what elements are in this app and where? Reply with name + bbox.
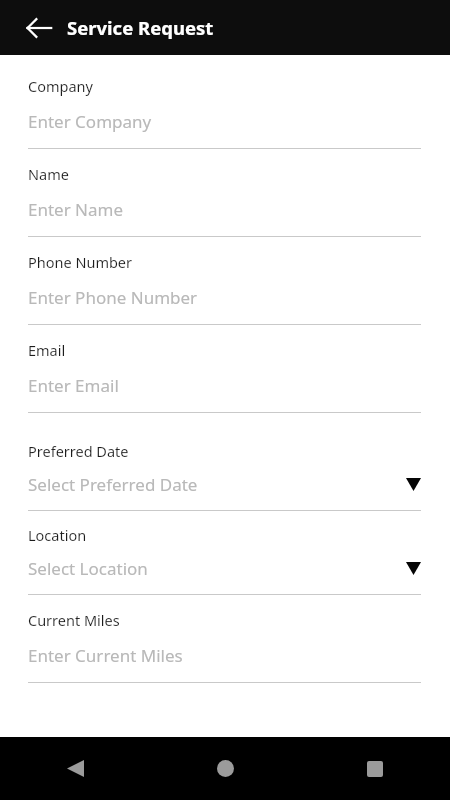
staticText: Enter Current Miles xyxy=(28,644,421,667)
staticText: Current Miles xyxy=(28,610,120,630)
staticText: Phone Number xyxy=(28,252,133,272)
button[interactable]: Location xyxy=(28,511,421,595)
staticText: Select Location xyxy=(28,557,406,580)
button[interactable]: Back xyxy=(0,737,150,800)
staticText: Enter Name xyxy=(28,198,421,221)
button[interactable]: Home xyxy=(150,737,300,800)
staticText: Name xyxy=(28,164,69,184)
staticText: Company xyxy=(28,76,93,96)
staticText: Email xyxy=(28,340,66,360)
staticText: Enter Email xyxy=(28,374,421,397)
button[interactable]: Recent apps xyxy=(300,737,450,800)
button[interactable]: Email xyxy=(28,325,421,413)
staticText: Enter Phone Number xyxy=(28,286,421,309)
button[interactable]: Name xyxy=(28,149,421,237)
staticText: Service Request xyxy=(67,15,214,40)
staticText: Enter Company xyxy=(28,110,421,133)
button[interactable]: Back xyxy=(24,13,54,43)
button[interactable]: Current Miles xyxy=(28,595,421,683)
button[interactable]: Phone Number xyxy=(28,237,421,325)
button[interactable]: Preferred Date xyxy=(28,413,421,511)
button[interactable]: Company xyxy=(28,76,421,149)
staticText: Preferred Date xyxy=(28,441,129,461)
staticText: Location xyxy=(28,525,87,545)
staticText: Select Preferred Date xyxy=(28,473,406,496)
